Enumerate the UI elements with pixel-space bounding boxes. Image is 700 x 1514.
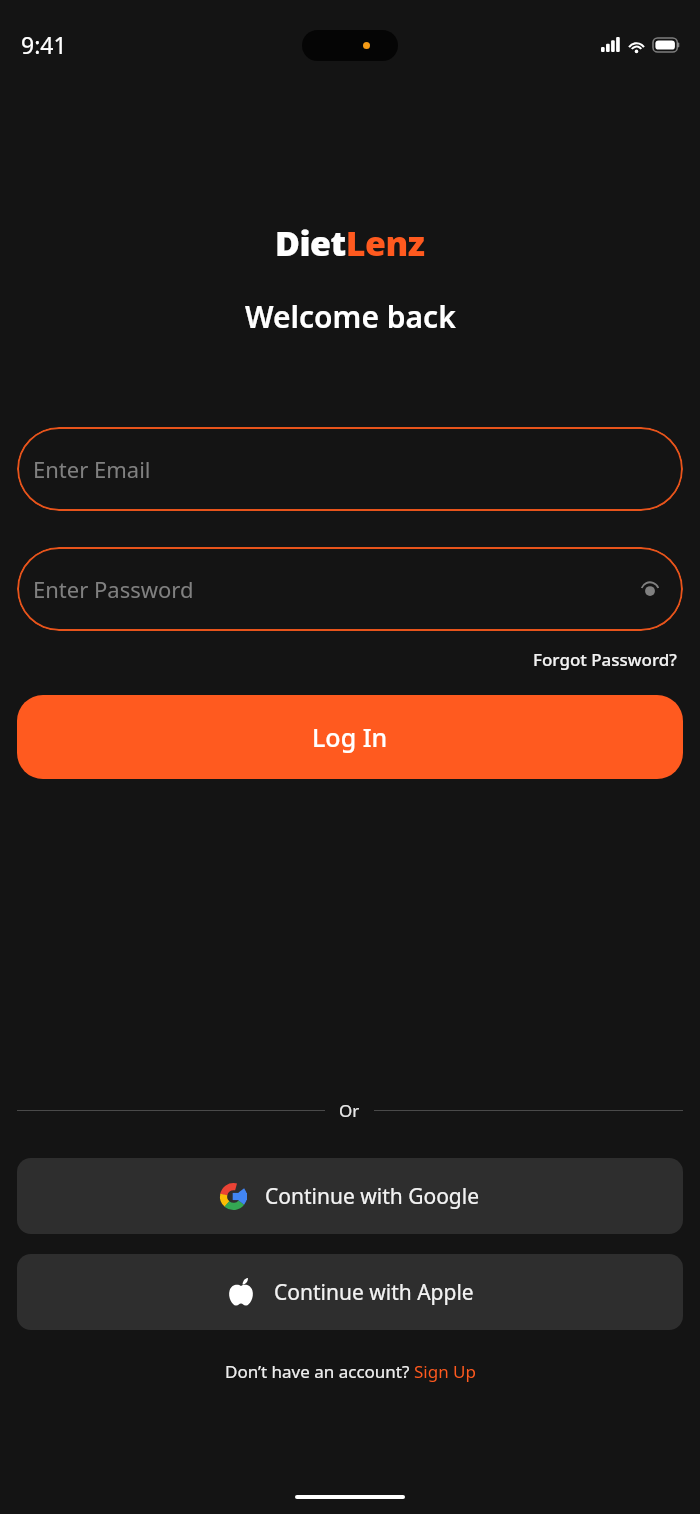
button[interactable]: Enter Email (17, 427, 683, 511)
staticText: Enter Password (33, 574, 194, 604)
button[interactable]: Continue with Google (17, 1158, 683, 1234)
staticText: Continue with Google (265, 1182, 480, 1211)
staticText: DietLenz (275, 220, 425, 266)
staticText: Log In (312, 720, 388, 754)
button[interactable]: Log In (17, 695, 683, 779)
staticText: Sign Up (414, 1360, 476, 1383)
staticText: Continue with Apple (274, 1278, 474, 1307)
button[interactable]: Forgot Password? (527, 645, 683, 674)
staticText: Don’t have an account? (225, 1360, 414, 1383)
button[interactable]: Enter Password (17, 547, 683, 631)
staticText: Welcome back (245, 296, 456, 337)
staticText: Enter Email (33, 454, 151, 484)
staticText: Forgot Password? (533, 648, 677, 671)
staticText: Or (339, 1099, 360, 1122)
button[interactable]: Sign Up (414, 1360, 476, 1383)
staticText: 9:41 (21, 29, 67, 60)
button[interactable]: Show password (635, 574, 665, 604)
button[interactable]: Continue with Apple (17, 1254, 683, 1330)
